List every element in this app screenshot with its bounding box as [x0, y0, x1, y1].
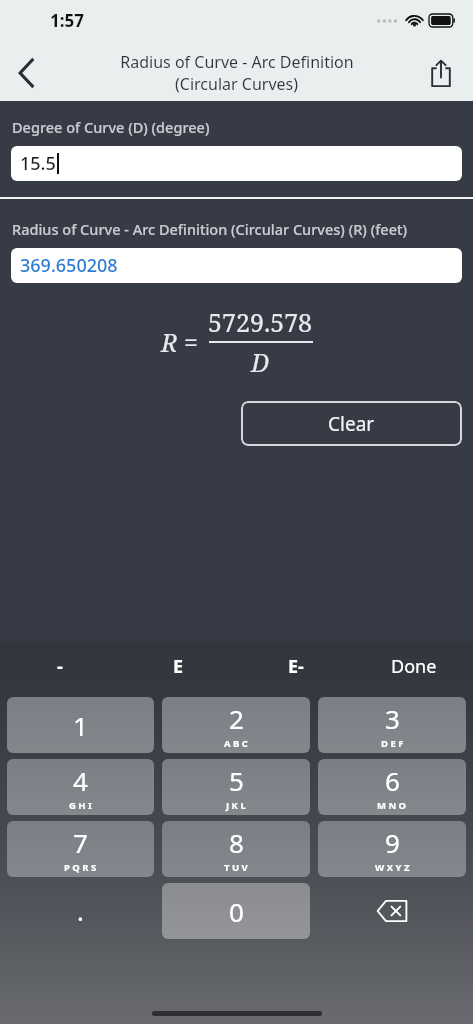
- staticText: (Circular Curves): [175, 73, 298, 95]
- staticText: .: [77, 894, 84, 928]
- staticText: 1:57: [50, 9, 84, 32]
- staticText: 1: [73, 708, 88, 743]
- staticText: E-: [288, 654, 304, 679]
- staticText: W X Y Z: [375, 861, 410, 874]
- button[interactable]: 2: [162, 697, 310, 753]
- staticText: Radius of Curve - Arc Definition (Circul…: [12, 219, 408, 239]
- button[interactable]: 3: [318, 697, 466, 753]
- button[interactable]: 369.650208: [11, 248, 462, 283]
- staticText: R =: [161, 325, 199, 359]
- staticText: 3: [385, 701, 400, 736]
- staticText: 5: [229, 763, 244, 798]
- staticText: 15.5: [20, 151, 56, 176]
- staticText: T U V: [224, 861, 248, 874]
- button[interactable]: E-: [237, 641, 355, 691]
- staticText: 4: [73, 763, 88, 798]
- staticText: Degree of Curve (D) (degree): [12, 117, 210, 137]
- button[interactable]: .: [7, 883, 154, 939]
- staticText: P Q R S: [64, 861, 97, 874]
- staticText: E: [173, 654, 184, 679]
- staticText: D E F: [381, 737, 404, 750]
- button[interactable]: 1: [7, 697, 154, 753]
- staticText: 6: [385, 763, 400, 798]
- button[interactable]: Share: [417, 49, 465, 97]
- button[interactable]: 6: [318, 759, 466, 815]
- button[interactable]: 7: [7, 821, 154, 877]
- staticText: J K L: [226, 799, 246, 812]
- staticText: 369.650208: [20, 253, 118, 278]
- staticText: 7: [73, 825, 88, 860]
- button[interactable]: -: [0, 641, 119, 691]
- staticText: 0: [229, 894, 244, 929]
- staticText: A B C: [224, 737, 248, 750]
- staticText: G H I: [69, 799, 92, 812]
- staticText: 2: [229, 701, 244, 736]
- button[interactable]: 15.5: [11, 146, 462, 181]
- button[interactable]: 5: [162, 759, 310, 815]
- staticText: Radius of Curve - Arc Definition: [120, 51, 354, 73]
- button[interactable]: Back: [0, 47, 52, 99]
- button[interactable]: E: [119, 641, 237, 691]
- staticText: 5729.578: [208, 305, 313, 339]
- button[interactable]: 9: [318, 821, 466, 877]
- staticText: M N O: [377, 799, 407, 812]
- staticText: Clear: [328, 411, 375, 437]
- staticText: 9: [385, 825, 400, 860]
- button[interactable]: 0: [162, 883, 310, 939]
- button[interactable]: Done: [355, 641, 473, 691]
- button[interactable]: 8: [162, 821, 310, 877]
- button[interactable]: 4: [7, 759, 154, 815]
- staticText: D: [251, 345, 270, 379]
- button[interactable]: Delete: [318, 883, 466, 939]
- staticText: Done: [391, 654, 437, 679]
- button[interactable]: Clear: [241, 401, 462, 446]
- staticText: 8: [229, 825, 244, 860]
- staticText: -: [57, 654, 63, 679]
